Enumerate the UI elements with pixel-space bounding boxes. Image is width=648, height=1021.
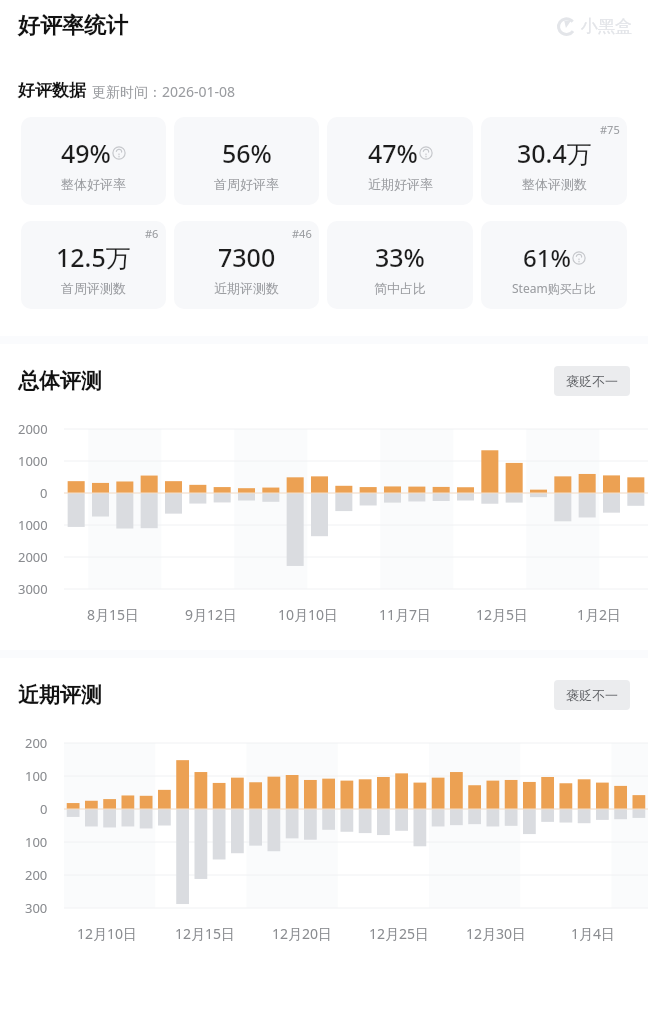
button[interactable]: 56% [174, 117, 319, 205]
staticText: 12月15日 [175, 924, 236, 943]
staticText: 首周评测数 [61, 280, 126, 296]
staticText: 好评率统计 [18, 12, 128, 40]
staticText: 33% [375, 240, 425, 274]
staticText: 0 [40, 800, 48, 818]
staticText: 1000 [18, 516, 48, 534]
button[interactable]: 小黑盒 [557, 16, 632, 37]
button[interactable]: 47% [327, 117, 473, 205]
staticText: 0 [40, 484, 48, 502]
staticText: 近期评测数 [214, 280, 279, 296]
staticText: 10月10日 [278, 605, 339, 624]
staticText: 首周好评率 [214, 176, 279, 192]
staticText: 2000 [18, 548, 48, 566]
staticText: Steam购买占比 [512, 280, 596, 296]
staticText: 12月5日 [476, 605, 529, 624]
staticText: 100 [25, 833, 48, 851]
staticText: 整体评测数 [522, 176, 587, 192]
staticText: 总体评测 [18, 368, 102, 394]
staticText: 100 [25, 767, 48, 785]
staticText: 30.4万 [517, 136, 592, 170]
button[interactable]: 褒贬不一 [554, 680, 630, 710]
staticText: 200 [25, 734, 48, 752]
staticText: 12月20日 [272, 924, 333, 943]
staticText: 近期评测 [18, 682, 102, 708]
staticText: 56% [222, 136, 272, 170]
staticText: 12月30日 [466, 924, 527, 943]
staticText: 300 [25, 899, 48, 917]
button[interactable]: #75 [481, 117, 627, 205]
staticText: #75 [600, 122, 620, 137]
staticText: 200 [25, 866, 48, 884]
staticText: 61% [523, 241, 571, 274]
staticText: 8月15日 [87, 605, 140, 624]
staticText: 好评数据 [18, 80, 86, 101]
staticText: 近期好评率 [368, 176, 433, 192]
staticText: 1月4日 [571, 924, 616, 943]
button[interactable]: #6 [21, 221, 166, 309]
staticText: 3000 [18, 580, 48, 598]
staticText: 9月12日 [185, 605, 238, 624]
staticText: 整体好评率 [61, 176, 126, 192]
staticText: 小黑盒 [581, 16, 632, 37]
staticText: 简中占比 [374, 280, 426, 296]
button[interactable]: 61% [481, 221, 627, 309]
staticText: 褒贬不一 [566, 687, 618, 703]
staticText: 11月7日 [379, 605, 432, 624]
button[interactable]: 33% [327, 221, 473, 309]
staticText: 7300 [218, 240, 276, 274]
button[interactable]: 49% [21, 117, 166, 205]
staticText: 1月2日 [577, 605, 622, 624]
staticText: #6 [145, 226, 159, 241]
staticText: #46 [292, 226, 312, 241]
staticText: 47% [368, 136, 418, 170]
staticText: 褒贬不一 [566, 373, 618, 389]
staticText: 49% [61, 136, 111, 170]
staticText: 更新时间：2026-01-08 [92, 82, 236, 101]
button[interactable]: #46 [174, 221, 319, 309]
staticText: 12月25日 [369, 924, 430, 943]
staticText: 2000 [18, 420, 48, 438]
button[interactable]: 褒贬不一 [554, 366, 630, 396]
staticText: 12.5万 [56, 240, 131, 274]
staticText: 12月10日 [77, 924, 138, 943]
staticText: 1000 [18, 452, 48, 470]
